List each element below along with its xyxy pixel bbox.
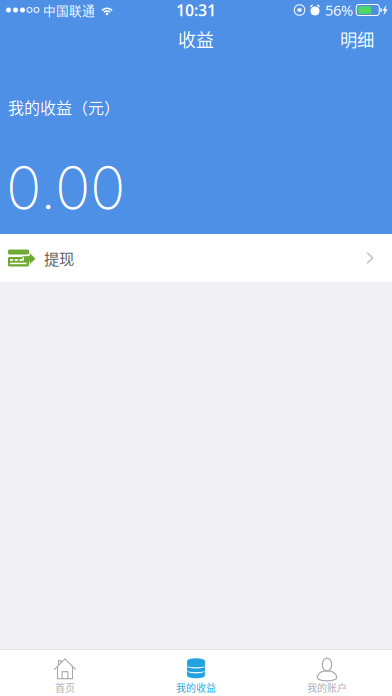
staticText: 首页 xyxy=(55,680,75,695)
staticText: 我的收益 xyxy=(176,680,216,695)
staticText: 中国联通 xyxy=(43,1,95,19)
staticText: 明细 xyxy=(340,26,374,52)
staticText: 56% xyxy=(325,0,353,20)
staticText: 收益 xyxy=(178,26,214,52)
button[interactable]: 首页 xyxy=(0,650,130,696)
staticText: 0.00 xyxy=(6,152,125,223)
staticText: 10:31 xyxy=(176,0,216,21)
staticText: 提现 xyxy=(44,247,74,269)
button[interactable]: 我的收益 xyxy=(131,650,261,696)
button[interactable]: 提现 xyxy=(0,234,392,282)
staticText: 我的账户 xyxy=(307,680,347,695)
button[interactable]: 明细 xyxy=(324,19,392,65)
button[interactable]: 我的账户 xyxy=(262,650,392,696)
staticText: 我的收益（元） xyxy=(8,95,120,119)
